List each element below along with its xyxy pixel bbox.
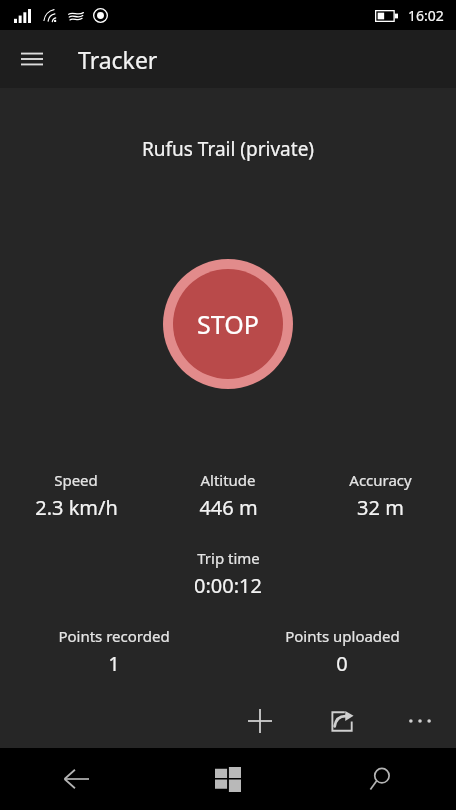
staticText: STOP [197,307,259,341]
staticText: 0 [336,650,348,677]
button[interactable]: More options [394,695,446,747]
button[interactable]: Share [316,695,368,747]
button[interactable]: Start [152,748,304,810]
staticText: Accuracy [349,470,412,490]
button[interactable]: Back [0,748,152,810]
staticText: Rufus Trail (private) [0,136,456,162]
staticText: Trip time [197,548,260,568]
staticText: 2.3 km/h [35,494,118,521]
staticText: 32 m [357,494,404,521]
staticText: Points uploaded [285,626,400,646]
button[interactable]: STOP [163,259,293,389]
staticText: 0:00:12 [194,572,262,599]
button[interactable]: Search [304,748,456,810]
staticText: Tracker [78,44,158,75]
button[interactable]: Menu [8,35,56,83]
staticText: Speed [54,470,98,490]
staticText: Points recorded [58,626,170,646]
staticText: 1 [108,650,120,677]
staticText: Altitude [200,470,256,490]
button[interactable]: Add [234,695,286,747]
staticText: 16:02 [408,6,444,25]
staticText: 446 m [199,494,258,521]
